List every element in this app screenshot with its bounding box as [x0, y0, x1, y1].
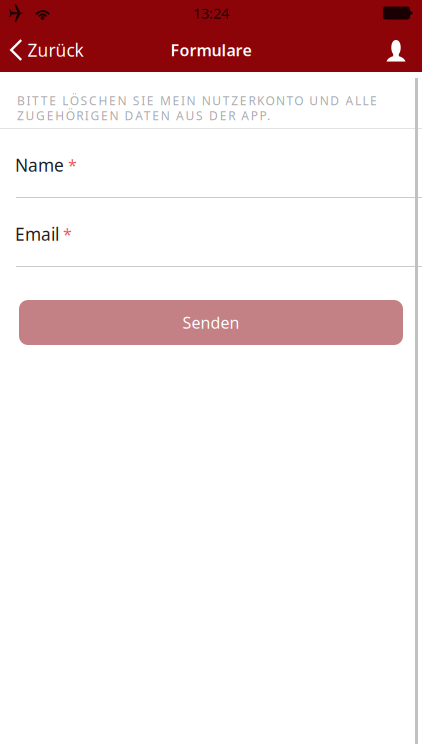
button[interactable]: Profil [370, 26, 422, 72]
button[interactable]: Name [0, 129, 422, 198]
button[interactable]: Zurück [0, 26, 130, 72]
staticText: Zurück [27, 38, 83, 61]
button[interactable]: Email [0, 198, 422, 267]
staticText: 13:24 [193, 3, 229, 23]
button[interactable]: Senden [19, 300, 403, 345]
staticText: Name [15, 153, 64, 176]
staticText: Email [15, 222, 59, 245]
staticText: BITTE LÖSCHEN SIE MEIN NUTZERKONTO UND A… [17, 92, 377, 108]
staticText: Senden [182, 312, 239, 333]
staticText: ZUGEHÖRIGEN DATEN AUS DER APP. [17, 107, 270, 123]
staticText: * [68, 154, 77, 176]
staticText: * [63, 223, 72, 245]
staticText: Formulare [170, 39, 251, 61]
